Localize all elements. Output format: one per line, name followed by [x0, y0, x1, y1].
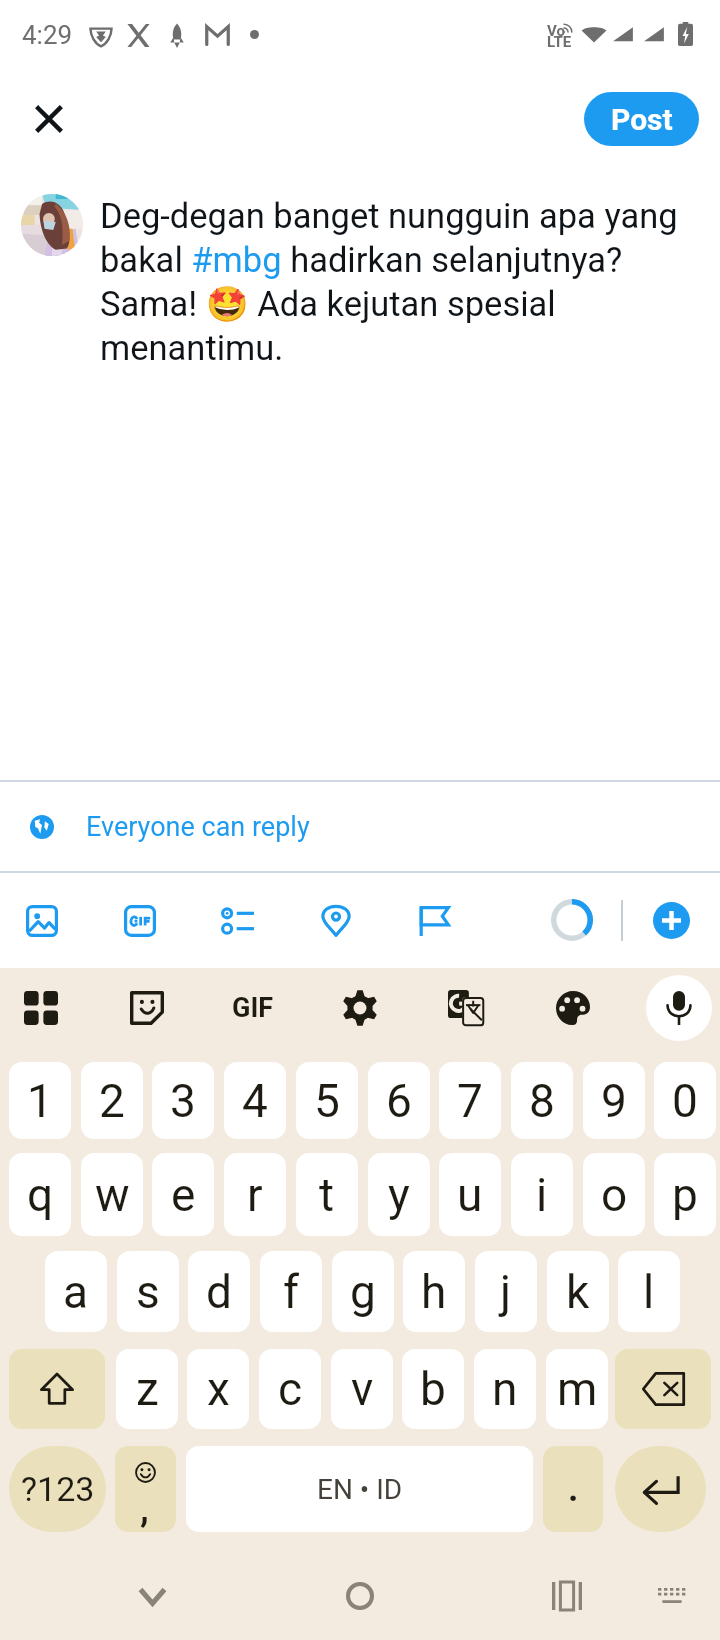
- button[interactable]: 7: [439, 1062, 501, 1139]
- button[interactable]: o: [583, 1153, 645, 1236]
- staticText: j: [500, 1265, 512, 1319]
- staticText: e: [171, 1168, 196, 1222]
- staticText: l: [643, 1265, 655, 1319]
- button[interactable]: n: [474, 1349, 536, 1429]
- button[interactable]: g: [332, 1251, 394, 1332]
- staticText: Deg-degan banget nungguin apa yang bakal…: [100, 196, 700, 368]
- staticText: a: [63, 1265, 89, 1319]
- staticText: t: [319, 1168, 335, 1222]
- staticText: o: [601, 1168, 628, 1222]
- staticText: y: [388, 1168, 410, 1222]
- button[interactable]: t: [296, 1153, 358, 1236]
- button[interactable]: 1: [9, 1062, 71, 1139]
- button[interactable]: x: [187, 1349, 249, 1429]
- staticText: r: [247, 1168, 263, 1222]
- button[interactable]: w: [81, 1153, 143, 1236]
- staticText: v: [351, 1362, 374, 1416]
- button[interactable]: Everyone can reply: [0, 782, 720, 871]
- button[interactable]: Close: [22, 92, 76, 146]
- button[interactable]: c: [259, 1349, 321, 1429]
- button[interactable]: u: [439, 1153, 501, 1236]
- button[interactable]: Voice input: [646, 975, 712, 1041]
- staticText: Vo: [547, 22, 565, 40]
- staticText: 4: [242, 1074, 268, 1128]
- button[interactable]: Character count: [542, 890, 602, 950]
- staticText: q: [27, 1168, 54, 1222]
- button[interactable]: h: [403, 1251, 465, 1332]
- staticText: Post: [611, 102, 673, 137]
- staticText: p: [672, 1168, 698, 1222]
- staticText: .: [568, 1468, 579, 1510]
- button[interactable]: d: [188, 1251, 250, 1332]
- staticText: 5: [314, 1074, 340, 1128]
- staticText: d: [206, 1265, 232, 1319]
- button[interactable]: z: [116, 1349, 178, 1429]
- staticText: ?123: [21, 1469, 95, 1509]
- button[interactable]: .: [543, 1446, 603, 1532]
- staticText: c: [278, 1362, 303, 1416]
- button[interactable]: j: [475, 1251, 537, 1332]
- button[interactable]: Change keyboard: [632, 1556, 712, 1636]
- staticText: 1: [27, 1074, 53, 1128]
- button[interactable]: q: [9, 1153, 71, 1236]
- button[interactable]: p: [654, 1153, 716, 1236]
- button[interactable]: Emoji: [115, 1446, 176, 1532]
- button[interactable]: Poll: [206, 873, 270, 969]
- button[interactable]: 6: [368, 1062, 430, 1139]
- button[interactable]: Keyboard settings: [342, 990, 378, 1026]
- button[interactable]: Shift: [9, 1349, 105, 1429]
- button[interactable]: 5: [296, 1062, 358, 1139]
- staticText: x: [207, 1362, 230, 1416]
- staticText: g: [350, 1265, 376, 1319]
- staticText: 2: [99, 1074, 125, 1128]
- button[interactable]: 3: [152, 1062, 214, 1139]
- button[interactable]: 0: [654, 1062, 716, 1139]
- button[interactable]: i: [511, 1153, 573, 1236]
- button[interactable]: Home: [320, 1556, 400, 1636]
- staticText: i: [536, 1168, 548, 1222]
- button[interactable]: 4: [224, 1062, 286, 1139]
- button[interactable]: Recent apps: [527, 1556, 607, 1636]
- button[interactable]: k: [547, 1251, 609, 1332]
- button[interactable]: 2: [81, 1062, 143, 1139]
- button[interactable]: Hide keyboard: [112, 1556, 192, 1636]
- button[interactable]: 9: [583, 1062, 645, 1139]
- staticText: 9: [601, 1074, 627, 1128]
- button[interactable]: a: [45, 1251, 107, 1332]
- button[interactable]: Theme: [556, 991, 590, 1025]
- staticText: m: [557, 1362, 598, 1416]
- button[interactable]: 8: [511, 1062, 573, 1139]
- staticText: 8: [529, 1074, 555, 1128]
- button[interactable]: Enter: [615, 1446, 706, 1532]
- button[interactable]: GIF keyboard: [228, 988, 278, 1028]
- staticText: ,: [140, 1488, 149, 1530]
- button[interactable]: r: [224, 1153, 286, 1236]
- button[interactable]: EN • ID: [186, 1446, 533, 1532]
- staticText: 6: [386, 1074, 412, 1128]
- button[interactable]: Post: [584, 92, 699, 146]
- button[interactable]: Backspace: [615, 1349, 711, 1429]
- staticText: b: [420, 1362, 446, 1416]
- staticText: GIF: [232, 992, 274, 1024]
- staticText: LTE: [547, 33, 572, 51]
- button[interactable]: l: [618, 1251, 680, 1332]
- button[interactable]: Location: [304, 873, 368, 969]
- button[interactable]: Stickers: [130, 991, 164, 1025]
- button[interactable]: Apps: [24, 991, 58, 1025]
- button[interactable]: Add GIF: [108, 873, 172, 969]
- staticText: Everyone can reply: [86, 811, 310, 843]
- button[interactable]: Add another post: [653, 902, 690, 939]
- button[interactable]: Community: [402, 873, 466, 969]
- button[interactable]: e: [152, 1153, 214, 1236]
- button[interactable]: b: [402, 1349, 464, 1429]
- button[interactable]: f: [260, 1251, 322, 1332]
- button[interactable]: s: [117, 1251, 179, 1332]
- button[interactable]: ?123: [9, 1446, 106, 1532]
- button[interactable]: Add photo: [10, 873, 74, 969]
- button[interactable]: m: [546, 1349, 608, 1429]
- button[interactable]: y: [368, 1153, 430, 1236]
- button[interactable]: v: [331, 1349, 393, 1429]
- button[interactable]: Profile photo: [21, 194, 83, 256]
- button[interactable]: Translate: [448, 990, 484, 1026]
- staticText: 0: [672, 1074, 698, 1128]
